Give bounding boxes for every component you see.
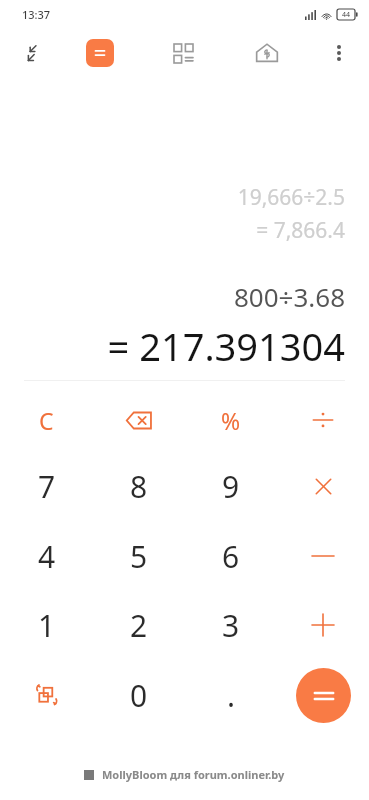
staticText: 9 xyxy=(222,466,240,507)
staticText: 4 xyxy=(38,536,56,577)
staticText: = 217.391304 xyxy=(107,320,345,372)
button[interactable]: Plus xyxy=(277,591,369,659)
button[interactable]: Collapse xyxy=(12,33,52,73)
button[interactable]: Minus xyxy=(277,521,369,591)
button[interactable]: 2 xyxy=(93,591,185,659)
button[interactable]: Calculator xyxy=(78,31,122,75)
button[interactable]: 8 xyxy=(93,451,185,521)
staticText: 2 xyxy=(130,605,148,646)
staticText: 1 xyxy=(38,605,56,646)
button[interactable]: Mortgage xyxy=(245,31,289,75)
staticText: 44 xyxy=(342,10,351,20)
staticText: % xyxy=(221,405,241,436)
staticText: 5 xyxy=(130,536,148,577)
staticText: 19,666÷2.5 xyxy=(237,183,345,212)
button[interactable]: More options xyxy=(317,31,361,75)
button[interactable]: 0 xyxy=(93,659,185,731)
staticText: MollyBloom для forum.onliner.by xyxy=(102,767,285,782)
button[interactable]: 7 xyxy=(0,451,93,521)
staticText: 7 xyxy=(38,466,56,507)
staticText: 0 xyxy=(130,675,148,716)
button[interactable]: 4 xyxy=(0,521,93,591)
button[interactable]: 1 xyxy=(0,591,93,659)
staticText: C xyxy=(39,405,54,436)
staticText: 6 xyxy=(222,536,240,577)
button[interactable]: Divide xyxy=(277,389,369,451)
button[interactable]: 9 xyxy=(185,451,277,521)
staticText: 3 xyxy=(222,605,240,646)
button[interactable]: Converters xyxy=(161,31,205,75)
staticText: 13:37 xyxy=(22,7,51,22)
staticText: . xyxy=(227,675,236,716)
button[interactable]: % xyxy=(185,389,277,451)
button[interactable]: 3 xyxy=(185,591,277,659)
button[interactable]: 6 xyxy=(185,521,277,591)
button[interactable]: 5 xyxy=(93,521,185,591)
staticText: 800÷3.68 xyxy=(233,279,345,314)
button[interactable]: Equals xyxy=(277,659,369,731)
staticText: = 7,866.4 xyxy=(256,216,345,245)
button[interactable]: Multiply xyxy=(277,451,369,521)
button[interactable]: Backspace xyxy=(93,389,185,451)
button[interactable]: C xyxy=(0,389,93,451)
button[interactable]: . xyxy=(185,659,277,731)
staticText: 8 xyxy=(130,466,148,507)
button[interactable]: Convert xyxy=(0,659,93,731)
